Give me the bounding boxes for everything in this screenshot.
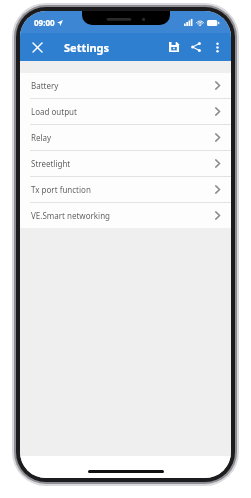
- staticText: 09:00: [34, 17, 55, 28]
- staticText: Battery: [31, 80, 215, 91]
- staticText: Streetlight: [31, 158, 215, 169]
- button[interactable]: Tx port function: [20, 177, 231, 202]
- button[interactable]: Battery: [20, 73, 231, 98]
- button[interactable]: More options: [207, 37, 227, 57]
- button[interactable]: Share: [185, 36, 207, 58]
- staticText: Load output: [31, 106, 215, 117]
- staticText: VE.Smart networking: [31, 210, 215, 221]
- staticText: Tx port function: [31, 184, 215, 195]
- button[interactable]: VE.Smart networking: [20, 203, 231, 228]
- button[interactable]: Load output: [20, 99, 231, 124]
- staticText: Relay: [31, 132, 215, 143]
- staticText: Settings: [64, 40, 110, 55]
- button[interactable]: Streetlight: [20, 151, 231, 176]
- button[interactable]: Close: [26, 36, 48, 58]
- button[interactable]: Save: [163, 36, 185, 58]
- button[interactable]: Relay: [20, 125, 231, 150]
